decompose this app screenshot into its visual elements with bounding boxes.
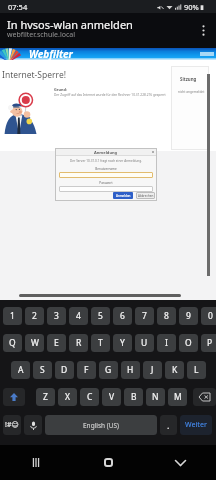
staticText: H	[127, 364, 134, 376]
button[interactable]: Recents	[0, 445, 72, 480]
button[interactable]: B	[124, 388, 143, 406]
staticText: 0	[208, 310, 213, 322]
button[interactable]: H	[121, 361, 140, 379]
staticText: Abbrechen	[138, 194, 154, 198]
button[interactable]: G	[99, 361, 118, 379]
button[interactable]: Backspace	[193, 388, 216, 406]
staticText: Sitzung	[180, 76, 197, 82]
button[interactable]: 6	[113, 307, 132, 325]
button[interactable]: 1	[3, 307, 22, 325]
button[interactable]: Y	[113, 334, 132, 352]
staticText: Grund:	[54, 87, 67, 92]
staticText: !#☺	[5, 420, 19, 430]
button[interactable]: M	[168, 388, 187, 406]
button[interactable]: Voice input	[24, 415, 42, 435]
button[interactable]: .	[160, 415, 177, 435]
button[interactable]: Weiter	[180, 415, 212, 435]
staticText: Anmelden	[116, 194, 131, 198]
staticText: 9	[186, 310, 191, 322]
staticText: 2	[32, 310, 37, 322]
staticText: U	[141, 337, 148, 349]
staticText: L	[194, 364, 199, 376]
button[interactable]: S	[33, 361, 52, 379]
button[interactable]: O	[179, 334, 198, 352]
button[interactable]: !#☺	[3, 415, 21, 435]
staticText: Internet-Sperre!	[2, 69, 66, 81]
staticText: P	[207, 337, 213, 349]
staticText: Benutzername	[55, 167, 157, 171]
button[interactable]: I	[157, 334, 176, 352]
button[interactable]: 3	[47, 307, 66, 325]
staticText: English (US)	[83, 421, 120, 430]
staticText: C	[87, 391, 93, 403]
staticText: Y	[120, 337, 125, 349]
staticText: O	[185, 337, 192, 349]
button[interactable]: 4	[69, 307, 88, 325]
button[interactable]: 2	[25, 307, 44, 325]
button[interactable]: P	[201, 334, 216, 352]
staticText: 3	[54, 310, 59, 322]
button[interactable]: 8	[157, 307, 176, 325]
staticText: V	[109, 391, 115, 403]
button[interactable]: 5	[91, 307, 110, 325]
staticText: D	[61, 364, 68, 376]
button[interactable]: U	[135, 334, 154, 352]
button[interactable]: T	[91, 334, 110, 352]
staticText: N	[152, 391, 159, 403]
staticText: Der Server 10.31.0.1 fragt nach einer An…	[58, 159, 154, 163]
staticText: nicht angemeldet	[178, 90, 205, 94]
button[interactable]: K	[165, 361, 184, 379]
button[interactable]: More options	[190, 17, 216, 43]
button[interactable]: W	[25, 334, 44, 352]
staticText: Passwort	[55, 181, 157, 185]
staticText: 6	[120, 310, 125, 322]
button[interactable]: D	[55, 361, 74, 379]
button[interactable]: 0	[201, 307, 216, 325]
staticText: S	[40, 364, 45, 376]
staticText: Q	[9, 337, 16, 349]
staticText: Der Zugriff auf das Internet wurde für d…	[54, 93, 166, 97]
staticText: Z	[43, 391, 48, 403]
button[interactable]: E	[47, 334, 66, 352]
staticText: 07:54	[8, 2, 28, 12]
staticText: In hvsos-wlan anmelden	[7, 17, 133, 32]
button[interactable]: Hide keyboard	[144, 445, 216, 480]
staticText: Weiter	[185, 420, 208, 430]
staticText: X	[65, 391, 70, 403]
staticText: R	[76, 337, 82, 349]
staticText: Anmeldung	[94, 150, 118, 155]
staticText: A	[18, 364, 24, 376]
button[interactable]: F	[77, 361, 96, 379]
button[interactable]: C	[80, 388, 99, 406]
staticText: W	[31, 337, 39, 349]
button[interactable]: J	[143, 361, 162, 379]
staticText: .	[167, 419, 170, 431]
button[interactable]: Anmelden	[113, 192, 133, 199]
staticText: K	[172, 364, 178, 376]
staticText: 8	[164, 310, 169, 322]
button[interactable]: A	[11, 361, 30, 379]
staticText: J	[151, 364, 154, 376]
staticText: 1	[10, 310, 15, 322]
button[interactable]: X	[58, 388, 77, 406]
button[interactable]: 9	[179, 307, 198, 325]
staticText: M	[174, 391, 182, 403]
button[interactable]: Home	[72, 445, 144, 480]
staticText: webfilter.schule.local	[7, 30, 76, 40]
button[interactable]: N	[146, 388, 165, 406]
button[interactable]: Z	[36, 388, 55, 406]
button[interactable]: 7	[135, 307, 154, 325]
staticText: 90%	[184, 2, 199, 12]
staticText: G	[105, 364, 112, 376]
staticText: I	[165, 337, 168, 349]
button[interactable]: R	[69, 334, 88, 352]
button[interactable]: Shift	[3, 388, 25, 406]
button[interactable]: Q	[3, 334, 22, 352]
button[interactable]: V	[102, 388, 121, 406]
staticText: 7	[142, 310, 147, 322]
staticText: 5	[98, 310, 103, 322]
button[interactable]: L	[187, 361, 206, 379]
button[interactable]: English (US)	[45, 415, 157, 435]
staticText: E	[54, 337, 59, 349]
button[interactable]: Abbrechen	[136, 192, 155, 199]
